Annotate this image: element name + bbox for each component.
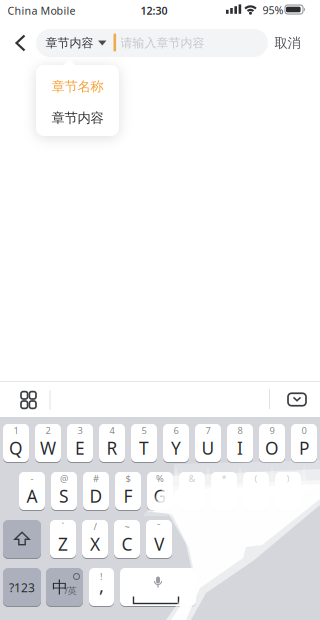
staticText: X [90, 532, 100, 555]
button[interactable]: E [67, 424, 93, 462]
staticText: F [123, 484, 132, 507]
staticText: 中 [52, 578, 68, 597]
staticText: 8 [237, 424, 242, 437]
button[interactable]: 章节内容 [45, 29, 106, 57]
button[interactable]: X [82, 520, 108, 558]
staticText: 3 [77, 424, 82, 437]
button[interactable]: I [227, 424, 253, 462]
staticText: 章节内容 [51, 110, 103, 126]
button[interactable]: 取消 [265, 27, 309, 59]
staticText: T [139, 436, 149, 459]
button[interactable]: P [291, 424, 317, 462]
staticText: W [40, 436, 56, 459]
button[interactable]: Switch language [46, 568, 83, 606]
staticText: ?123 [9, 579, 35, 595]
button[interactable]: F [115, 472, 141, 510]
staticText: ( [254, 472, 257, 485]
button[interactable]: 章节名称 [36, 69, 119, 104]
staticText: Y [171, 436, 181, 459]
button[interactable]: S [51, 472, 77, 510]
button[interactable]: Dismiss keyboard [282, 384, 312, 414]
staticText: 5 [141, 424, 146, 437]
button[interactable]: J [211, 472, 237, 510]
staticText: 1 [13, 424, 18, 437]
button[interactable]: D [83, 472, 109, 510]
staticText: D [89, 484, 102, 507]
staticText: @ [60, 472, 68, 485]
button[interactable]: Q [3, 424, 29, 462]
button[interactable]: W [35, 424, 61, 462]
staticText: U [201, 436, 214, 459]
button[interactable]: C [114, 520, 140, 558]
staticText: R [106, 436, 117, 459]
button[interactable]: H [179, 472, 205, 510]
button[interactable]: More input options [13, 385, 43, 415]
button[interactable]: Z [50, 520, 76, 558]
staticText: ~ [124, 520, 129, 533]
staticText: / [93, 520, 96, 533]
staticText: 12:30 [140, 3, 167, 18]
staticText: E [75, 436, 85, 459]
staticText: & [188, 472, 195, 485]
button[interactable]: Shift [3, 520, 41, 558]
staticText: $ [125, 472, 130, 485]
staticText: ˉ [157, 520, 161, 533]
staticText: - [30, 472, 33, 485]
staticText: China Mobile [7, 3, 75, 18]
staticText: O [265, 436, 279, 459]
staticText: G [153, 484, 166, 507]
staticText: A [26, 484, 37, 507]
staticText: 0 [301, 424, 306, 437]
button[interactable]: Y [163, 424, 189, 462]
staticText: C [121, 532, 132, 555]
button[interactable]: 章节内容 [36, 100, 119, 135]
button[interactable]: V [146, 520, 172, 558]
button[interactable]: R [99, 424, 125, 462]
button[interactable]: T [131, 424, 157, 462]
staticText: I [237, 436, 243, 459]
staticText: % [156, 472, 164, 485]
staticText: ! [100, 570, 103, 583]
staticText: Z [58, 532, 68, 555]
staticText: 7 [205, 424, 210, 437]
button[interactable]: L [275, 472, 301, 510]
staticText: 95% [262, 3, 283, 17]
button[interactable]: Comma [89, 568, 114, 606]
staticText: 请输入章节内容 [120, 36, 204, 50]
staticText: 章节内容 [45, 36, 93, 50]
staticText: # [93, 472, 99, 485]
staticText: , [99, 573, 104, 598]
staticText: * [221, 472, 226, 485]
staticText: 2 [45, 424, 50, 437]
staticText: 取消 [274, 35, 300, 51]
staticText: P [299, 436, 309, 459]
button[interactable]: K [243, 472, 269, 510]
staticText: 6 [173, 424, 178, 437]
staticText: 4 [109, 424, 114, 437]
button[interactable]: Back [15, 34, 25, 51]
button[interactable]: O [259, 424, 285, 462]
staticText: /英 [64, 584, 76, 597]
staticText: 9 [269, 424, 274, 437]
staticText: S [59, 484, 69, 507]
staticText: Q [9, 436, 23, 459]
button[interactable]: Space [120, 568, 196, 606]
staticText: ) [286, 472, 289, 485]
staticText: V [154, 532, 164, 555]
staticText: 章节名称 [51, 78, 103, 95]
button[interactable]: U [195, 424, 221, 462]
button[interactable]: G [147, 472, 173, 510]
staticText: ` [61, 520, 64, 533]
button[interactable]: A [19, 472, 45, 510]
button[interactable]: Numbers [3, 568, 41, 606]
